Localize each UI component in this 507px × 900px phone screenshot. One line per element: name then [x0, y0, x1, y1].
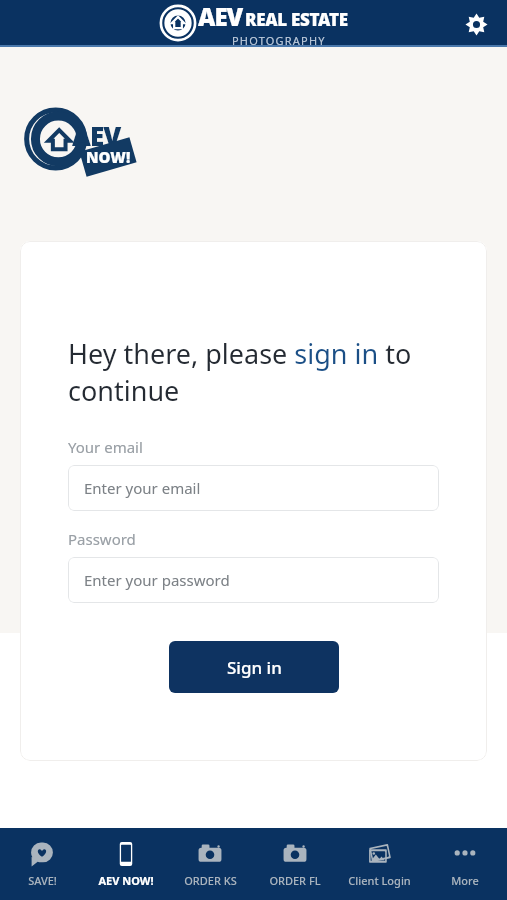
- staticText: Sign in: [227, 656, 282, 679]
- staticText: Password: [68, 529, 136, 549]
- button[interactable]: SAVE!: [0, 828, 84, 900]
- staticText: REAL ESTATE: [245, 8, 348, 31]
- button[interactable]: ORDER KS: [168, 828, 252, 900]
- staticText: SAVE!: [28, 873, 57, 888]
- button[interactable]: Sign in: [169, 641, 339, 693]
- staticText: AEV: [198, 0, 243, 33]
- staticText: PHOTOGRAPHY: [232, 33, 326, 45]
- button[interactable]: ORDER FL: [252, 828, 337, 900]
- button[interactable]: Settings: [455, 3, 497, 45]
- button[interactable]: AEV NOW!: [84, 828, 168, 900]
- staticText: AEV NOW!: [98, 873, 154, 888]
- staticText: Enter your email: [84, 478, 201, 498]
- staticText: AEV: [72, 118, 121, 153]
- staticText: Client Login: [348, 873, 411, 888]
- staticText: More: [451, 873, 479, 888]
- staticText: ORDER KS: [184, 873, 237, 888]
- staticText: ORDER FL: [269, 873, 321, 888]
- staticText: Enter your password: [84, 570, 230, 590]
- button[interactable]: More: [422, 828, 507, 900]
- button[interactable]: Client Login: [337, 828, 422, 900]
- button[interactable]: Enter your password: [68, 557, 439, 603]
- staticText: Your email: [68, 437, 143, 457]
- button[interactable]: Enter your email: [68, 465, 439, 511]
- staticText: Hey there, please sign in to continue: [68, 335, 439, 409]
- staticText: NOW!: [86, 147, 131, 167]
